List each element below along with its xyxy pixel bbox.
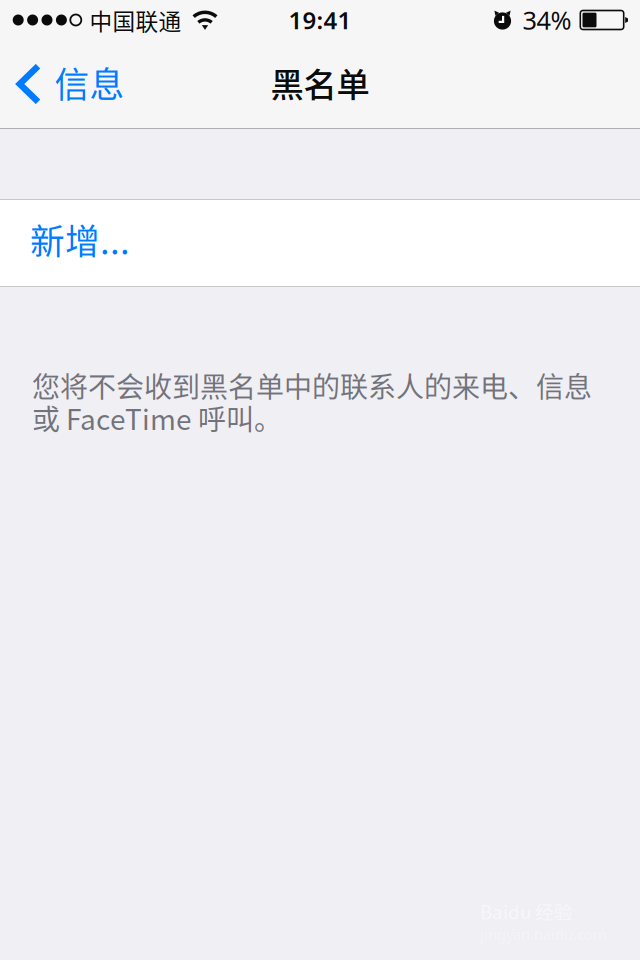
button[interactable]: 新增...: [0, 200, 640, 286]
staticText: 信息: [54, 57, 124, 108]
staticText: 中国联通: [89, 4, 181, 36]
staticText: 34%: [522, 3, 571, 37]
staticText: 黑名单: [270, 58, 369, 107]
button[interactable]: 信息: [0, 40, 138, 128]
staticText: 19:41: [288, 4, 351, 36]
staticText: 新增...: [30, 214, 130, 265]
staticText: 您将不会收到黑名单中的联系人的来电、信息或 FaceTime 呼叫。: [32, 365, 592, 438]
